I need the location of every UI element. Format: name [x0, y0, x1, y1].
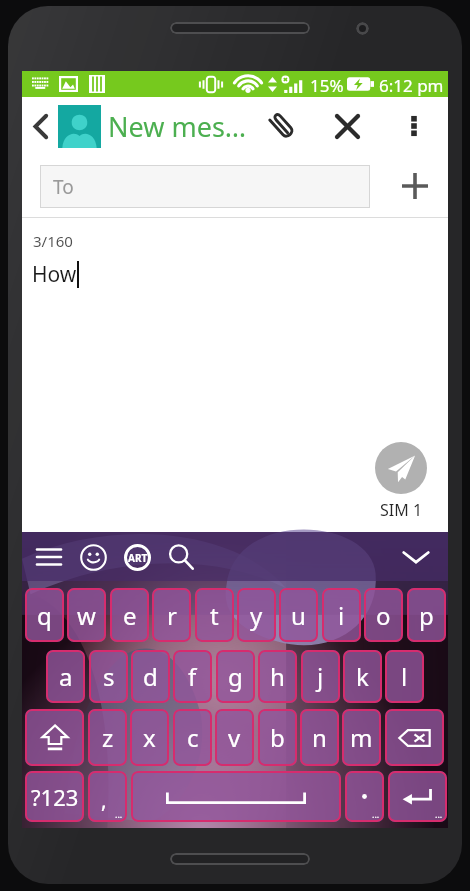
staticText: w [77, 599, 96, 632]
staticText: r [167, 599, 177, 632]
button[interactable]: ?123 [25, 771, 84, 822]
staticText: a [59, 660, 73, 693]
staticText: ... [435, 808, 443, 820]
button[interactable]: , [88, 771, 127, 822]
button[interactable]: Close [321, 100, 373, 152]
staticText: New mes… [108, 108, 247, 145]
button[interactable]: p [407, 588, 446, 642]
staticText: e [123, 599, 137, 632]
button[interactable]: w [67, 588, 106, 642]
staticText: To [53, 174, 74, 200]
staticText: s [103, 660, 115, 693]
button[interactable]: e [110, 588, 149, 642]
staticText: ... [115, 808, 123, 820]
staticText: p [419, 599, 434, 632]
button[interactable]: t [195, 588, 234, 642]
button[interactable]: q [25, 588, 64, 642]
staticText: q [37, 599, 52, 632]
button[interactable]: Backspace [385, 709, 444, 766]
button[interactable]: x [130, 709, 169, 766]
button[interactable]: Art [119, 539, 155, 575]
button[interactable]: c [173, 709, 212, 766]
staticText: n [312, 721, 327, 754]
staticText: t [210, 599, 219, 632]
button[interactable]: ... [345, 771, 384, 822]
staticText: ART [128, 551, 148, 565]
staticText: c [187, 721, 199, 754]
staticText: i [338, 599, 345, 632]
button[interactable]: Menu [31, 539, 67, 575]
button[interactable]: Add recipient [392, 163, 438, 209]
staticText: 6:12 pm [379, 74, 444, 97]
button[interactable]: Space [131, 771, 341, 822]
staticText: v [228, 721, 241, 754]
button[interactable]: h [258, 650, 297, 703]
staticText: l [401, 660, 408, 693]
staticText: ... [372, 808, 380, 820]
staticText: ?123 [31, 782, 79, 812]
button[interactable]: u [279, 588, 318, 642]
button[interactable]: j [301, 650, 340, 703]
button[interactable]: g [216, 650, 255, 703]
button[interactable]: v [215, 709, 254, 766]
button[interactable]: Search [163, 539, 199, 575]
staticText: y [250, 599, 263, 632]
button[interactable]: y [237, 588, 276, 642]
button[interactable]: Send [375, 442, 427, 494]
staticText: x [143, 721, 156, 754]
button[interactable]: d [131, 650, 170, 703]
button[interactable]: Enter [388, 771, 447, 822]
button[interactable]: r [152, 588, 191, 642]
button[interactable]: Emoji [75, 539, 111, 575]
button[interactable]: m [342, 709, 381, 766]
staticText: o [376, 599, 391, 632]
button[interactable]: n [300, 709, 339, 766]
button[interactable]: b [258, 709, 297, 766]
button[interactable]: Back [22, 102, 58, 150]
staticText: g [228, 660, 243, 693]
staticText: u [291, 599, 306, 632]
button[interactable]: i [322, 588, 361, 642]
button[interactable]: Attach [256, 100, 308, 152]
button[interactable]: More options [397, 100, 431, 152]
button[interactable]: z [88, 709, 127, 766]
staticText: m [350, 721, 373, 754]
button[interactable]: a [46, 650, 85, 703]
staticText: d [143, 660, 158, 693]
button[interactable]: f [173, 650, 212, 703]
staticText: 15% [310, 74, 344, 97]
staticText: How [32, 260, 77, 289]
staticText: j [317, 660, 324, 693]
staticText: k [356, 660, 369, 693]
staticText: 3/160 [33, 231, 73, 251]
staticText: z [102, 721, 114, 754]
staticText: b [270, 721, 285, 754]
button[interactable]: s [89, 650, 128, 703]
staticText: f [188, 660, 197, 693]
button[interactable]: To [40, 165, 370, 208]
button[interactable]: l [385, 650, 424, 703]
staticText: , [101, 786, 107, 815]
staticText: h [270, 660, 285, 693]
button[interactable]: k [343, 650, 382, 703]
button[interactable]: o [364, 588, 403, 642]
button[interactable]: Hide keyboard [394, 535, 438, 579]
button[interactable]: Shift [25, 709, 84, 766]
staticText: SIM 1 [380, 499, 423, 521]
